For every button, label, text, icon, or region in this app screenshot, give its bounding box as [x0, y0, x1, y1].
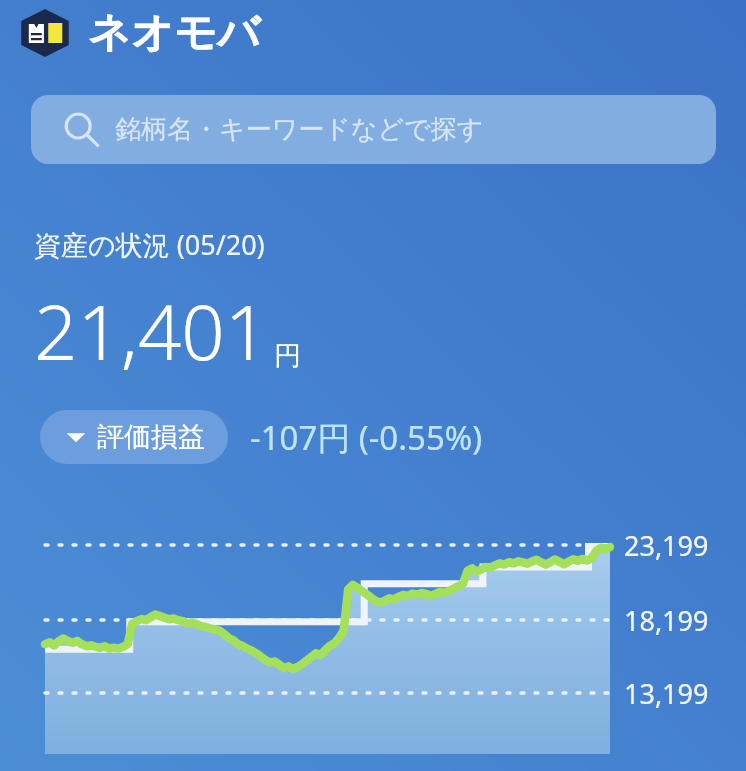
other: Neomoba logo [18, 8, 72, 58]
staticText: 21,401 [34, 279, 269, 383]
staticText: 円 [274, 339, 301, 373]
button[interactable]: 評価損益 [40, 410, 228, 464]
staticText: 13,199 [624, 675, 734, 712]
button[interactable]: Neomoba logo [18, 6, 260, 60]
staticText: ネオモバ [88, 7, 260, 60]
staticText: 18,199 [624, 602, 734, 639]
staticText: 評価損益 [97, 420, 205, 454]
staticText: 23,199 [624, 527, 734, 564]
staticText: 銘柄名・キーワードなどで探す [115, 113, 484, 146]
staticText: -107円 (-0.55%) [250, 415, 483, 460]
staticText: 資産の状況 (05/20) [34, 226, 265, 263]
button[interactable]: 銘柄名・キーワードなどで探す [31, 95, 716, 164]
